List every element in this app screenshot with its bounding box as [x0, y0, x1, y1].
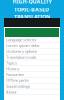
button[interactable]: Offline packs [4, 78, 60, 83]
staticText: Lorem ipsum dolor [6, 43, 40, 48]
staticText: Sound settings [6, 83, 30, 89]
staticText: Dictionary options [6, 49, 37, 54]
button[interactable]: Dictionary options [4, 49, 60, 54]
staticText: Offline packs [6, 78, 29, 83]
button[interactable]: About [4, 89, 60, 95]
button[interactable]: History [4, 66, 60, 72]
staticText: Language selector [6, 37, 37, 42]
staticText: HIGH-QUALITY [12, 0, 51, 5]
button[interactable]: Topics [4, 60, 60, 66]
staticText: Favourites [6, 72, 24, 77]
staticText: About [6, 89, 16, 94]
button[interactable]: Lorem ipsum dolor [4, 43, 60, 49]
staticText: Translation mode [6, 54, 36, 60]
button[interactable]: Translation mode [4, 54, 60, 60]
button[interactable]: Language selector [4, 37, 60, 43]
button[interactable]: Favourites [4, 72, 60, 78]
button[interactable]: Sound settings [4, 83, 60, 89]
staticText: History [6, 66, 19, 71]
staticText: Topics [6, 60, 17, 65]
staticText: TOPIC-BASED TRANSLATION [14, 6, 50, 20]
